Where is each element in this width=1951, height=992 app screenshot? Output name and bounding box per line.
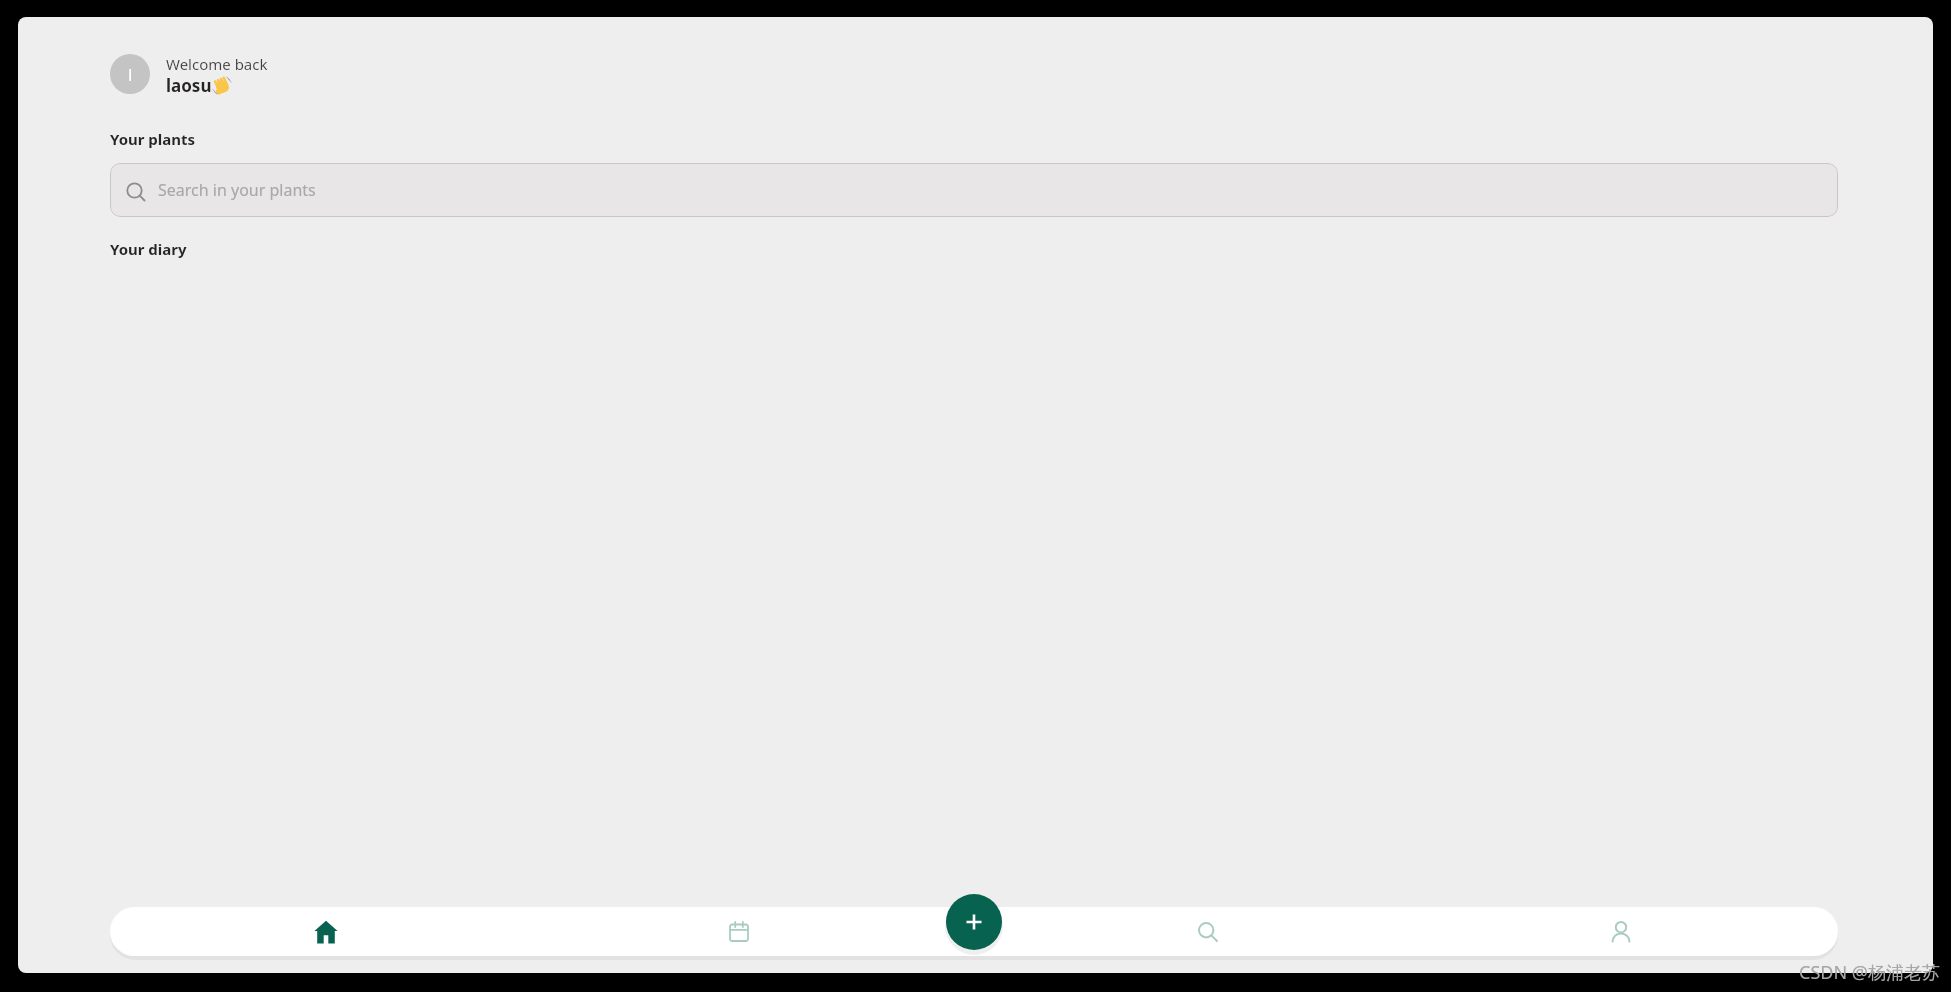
button[interactable] — [302, 907, 350, 956]
button[interactable]: l — [110, 54, 150, 94]
button[interactable] — [1184, 907, 1232, 956]
button[interactable] — [715, 907, 763, 956]
staticText: CSDN @杨浦老苏 — [1799, 960, 1940, 985]
button[interactable] — [1597, 907, 1645, 956]
staticText: laosu — [166, 74, 212, 97]
staticText: Search in your plants — [158, 179, 316, 201]
staticText: l — [128, 63, 133, 86]
button[interactable]: Search in your plants — [110, 163, 1838, 217]
staticText: Welcome back — [166, 54, 268, 74]
staticText: Your plants — [110, 129, 196, 149]
button[interactable] — [946, 894, 1002, 950]
staticText: Your diary — [110, 239, 187, 259]
